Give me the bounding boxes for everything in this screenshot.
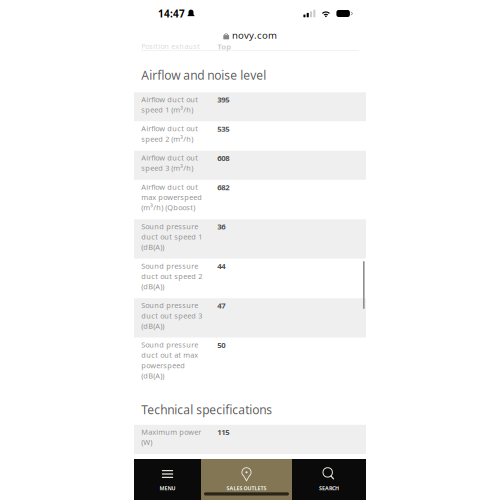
staticText: (dB(A)) xyxy=(141,242,164,252)
staticText: 14:47 xyxy=(158,7,185,20)
button[interactable]: SEARCH xyxy=(292,459,366,500)
staticText: Airflow duct out xyxy=(141,94,198,104)
staticText: 36 xyxy=(217,221,225,232)
staticText: Airflow duct out xyxy=(141,182,198,192)
staticText: 115 xyxy=(217,427,229,437)
staticText: Airflow and noise level xyxy=(141,67,266,83)
button[interactable]: SALES OUTLETS xyxy=(201,459,292,500)
staticText: SEARCH xyxy=(319,484,339,492)
button[interactable]: MENU xyxy=(134,459,201,500)
staticText: MENU xyxy=(159,484,175,492)
staticText: Sound pressure xyxy=(141,221,198,231)
staticText: Sound pressure xyxy=(141,261,198,271)
staticText: Sound pressure xyxy=(141,340,198,350)
staticText: (dB(A)) xyxy=(141,371,164,381)
staticText: Sound pressure xyxy=(141,300,198,310)
staticText: 608 xyxy=(217,153,229,163)
staticText: (dB(A)) xyxy=(141,281,164,291)
staticText: Technical specifications xyxy=(141,401,272,418)
staticText: (dB(A)) xyxy=(141,321,164,331)
staticText: novy.com xyxy=(232,28,277,42)
staticText: SALES OUTLETS xyxy=(226,484,266,492)
staticText: duct out speed 2 xyxy=(141,271,202,281)
button[interactable]: novy.com xyxy=(134,27,366,43)
staticText: Position exhaust xyxy=(141,41,200,51)
staticText: 47 xyxy=(217,300,225,311)
staticText: (m³/h) (Qboost) xyxy=(141,202,195,212)
staticText: powerspeed xyxy=(141,360,185,370)
staticText: 44 xyxy=(217,261,225,271)
staticText: duct out at max xyxy=(141,350,198,360)
staticText: duct out speed 3 xyxy=(141,310,202,320)
staticText: Airflow duct out xyxy=(141,153,198,163)
staticText: 535 xyxy=(217,123,229,134)
staticText: max powerspeed xyxy=(141,192,202,202)
staticText: (W) xyxy=(141,437,152,447)
staticText: speed 2 (m³/h) xyxy=(141,134,193,144)
staticText: 50 xyxy=(217,340,225,350)
staticText: Maximum power xyxy=(141,427,201,437)
staticText: 682 xyxy=(217,182,229,192)
staticText: Airflow duct out xyxy=(141,123,198,133)
staticText: Top xyxy=(217,41,231,52)
staticText: speed 3 (m³/h) xyxy=(141,163,193,173)
staticText: duct out speed 1 xyxy=(141,232,202,242)
staticText: 395 xyxy=(217,94,229,105)
staticText: speed 1 (m³/h) xyxy=(141,105,193,115)
